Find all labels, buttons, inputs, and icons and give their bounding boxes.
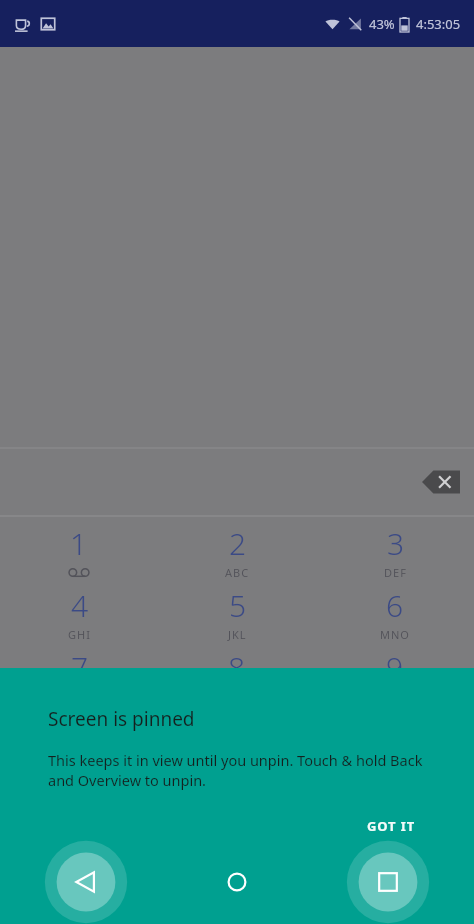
staticText: JKL: [228, 627, 247, 642]
staticText: This keeps it in view until you unpin. T…: [48, 750, 426, 790]
staticText: 1: [70, 523, 88, 564]
button[interactable]: GOT IT: [359, 812, 424, 840]
button[interactable]: Overview: [345, 840, 431, 924]
staticText: 7: [71, 647, 89, 688]
button[interactable]: Back: [43, 840, 129, 924]
staticText: 4:53:05: [416, 15, 461, 33]
staticText: MNO: [380, 627, 410, 642]
button[interactable]: 8: [158, 647, 316, 709]
button[interactable]: Home: [207, 852, 267, 912]
button[interactable]: 4: [0, 585, 158, 647]
button[interactable]: 6: [316, 585, 474, 647]
staticText: 8: [228, 647, 246, 688]
staticText: GHI: [68, 627, 91, 642]
staticText: ABC: [225, 565, 250, 580]
button[interactable]: 7: [0, 647, 158, 709]
staticText: 5: [229, 585, 247, 626]
staticText: 4: [71, 585, 89, 626]
button[interactable]: 2: [158, 523, 316, 585]
staticText: Screen is pinned: [48, 706, 195, 732]
button[interactable]: Backspace: [422, 469, 460, 495]
staticText: 9: [386, 647, 404, 688]
staticText: GOT IT: [367, 817, 416, 835]
staticText: 3: [387, 523, 405, 564]
staticText: 43%: [369, 15, 395, 33]
button[interactable]: 3: [316, 523, 474, 585]
button[interactable]: 9: [316, 647, 474, 709]
staticText: DEF: [384, 565, 407, 580]
staticText: 6: [386, 585, 404, 626]
button[interactable]: 1: [0, 523, 158, 585]
staticText: 2: [229, 523, 247, 564]
button[interactable]: 5: [158, 585, 316, 647]
